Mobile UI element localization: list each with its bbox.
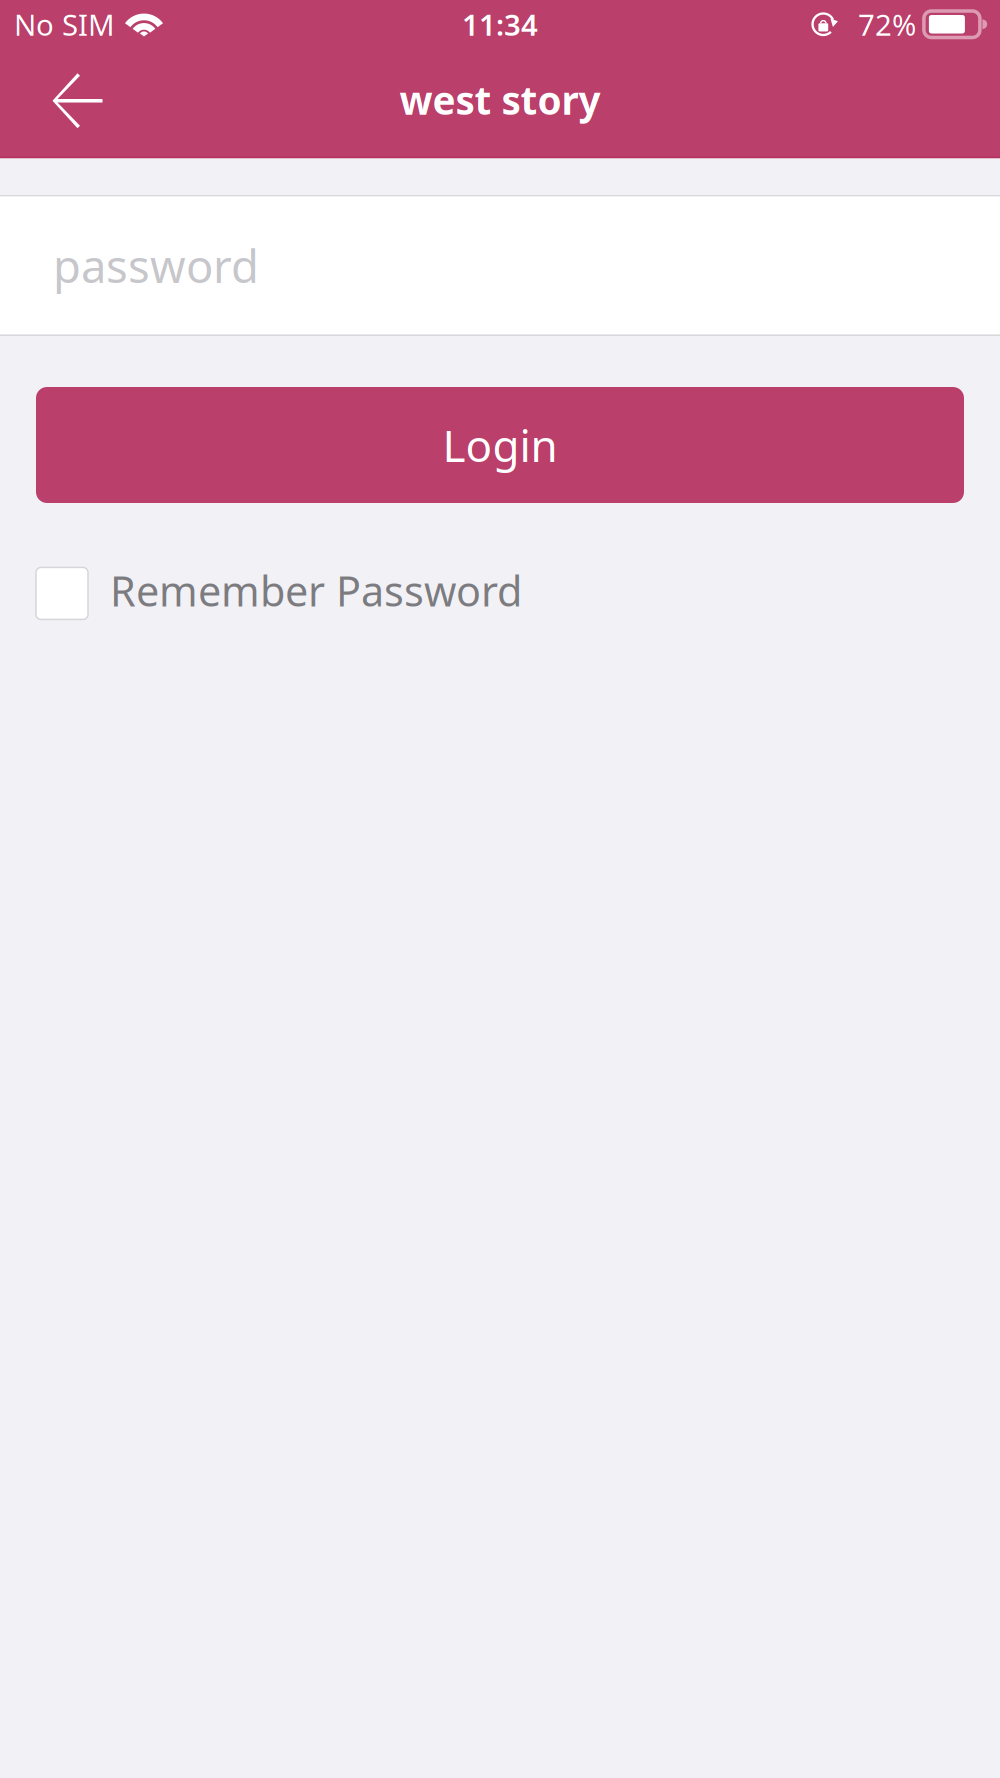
button[interactable]: password [0,195,1000,336]
staticText: password [53,235,259,296]
staticText: Login [442,416,557,474]
button[interactable]: Remember Password [36,566,522,621]
staticText: No SIM [14,5,115,44]
staticText: west story [399,74,600,125]
button[interactable]: Login [36,387,964,503]
staticText: Remember Password [110,563,522,618]
staticText: 72% [858,5,916,44]
staticText: 11:34 [462,5,538,44]
button[interactable]: Back [0,49,156,157]
